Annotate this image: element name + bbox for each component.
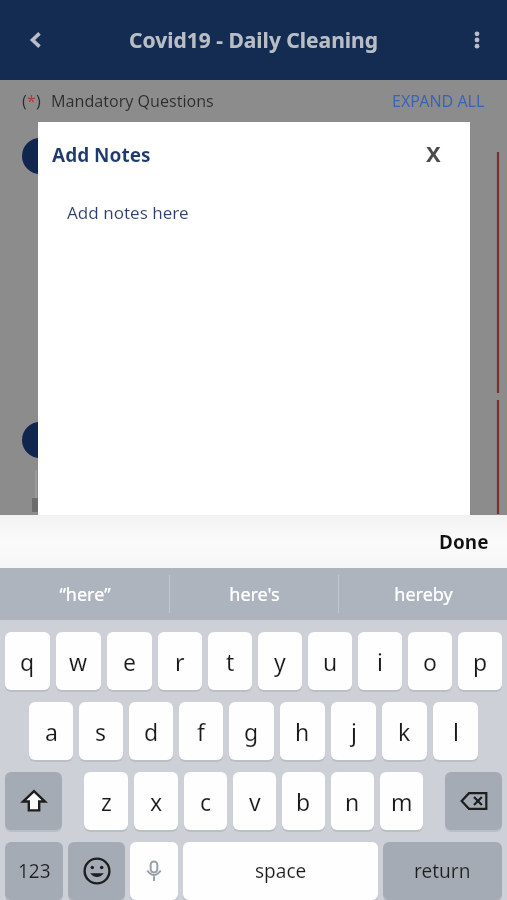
staticText: ) [36,90,41,112]
staticText: c [200,786,212,817]
button[interactable]: “here” [0,568,169,620]
staticText: EXPAND ALL [392,90,485,112]
button[interactable]: Emoji [68,842,125,900]
staticText: s [95,716,107,747]
staticText: “here” [59,582,111,607]
button[interactable]: r [158,632,202,690]
staticText: X [426,138,441,168]
button[interactable]: c [184,772,227,830]
staticText: b [296,786,311,817]
button[interactable]: u [308,632,352,690]
button[interactable]: Done [421,521,507,563]
staticText: d [144,716,159,747]
button[interactable]: j [331,702,376,760]
button[interactable]: Voice input [130,842,178,900]
staticText: l [453,716,459,747]
button[interactable]: d [129,702,173,760]
button[interactable]: Close [412,132,454,174]
button[interactable]: t [208,632,252,690]
staticText: h [295,716,310,747]
button[interactable]: space [183,842,378,900]
button[interactable]: z [84,772,128,830]
button[interactable]: w [56,632,101,690]
staticText: Done [439,529,489,555]
button[interactable]: p [458,632,502,690]
button[interactable]: i [358,632,402,690]
staticText: q [20,646,35,677]
button[interactable]: a [29,702,73,760]
button[interactable]: Backspace [445,772,502,830]
staticText: ( [22,90,27,112]
staticText: hereby [394,582,453,607]
staticText: u [323,646,338,677]
button[interactable]: hereby [339,568,507,620]
button[interactable]: return [383,842,502,900]
staticText: g [244,716,259,747]
button[interactable]: Back [14,18,58,62]
staticText: * [27,90,36,112]
staticText: space [255,858,307,884]
staticText: z [101,786,112,817]
staticText: p [473,646,488,677]
staticText: n [345,786,360,817]
button[interactable]: g [229,702,274,760]
button[interactable]: o [408,632,452,690]
staticText: Add Notes [52,142,151,168]
button[interactable]: EXPAND ALL [392,84,485,118]
staticText: a [45,716,58,747]
staticText: Add notes here [67,201,189,224]
staticText: k [398,716,411,747]
button[interactable]: v [233,772,276,830]
button[interactable]: x [134,772,178,830]
button[interactable]: k [382,702,427,760]
button[interactable]: m [380,772,423,830]
staticText: return [414,858,471,884]
button[interactable]: More options [455,18,499,62]
button[interactable]: Shift [5,772,62,830]
button[interactable]: b [282,772,325,830]
staticText: here's [229,582,280,607]
staticText: e [123,646,136,677]
staticText: 123 [18,858,51,884]
staticText: t [226,646,235,677]
button[interactable]: n [331,772,374,830]
staticText: w [69,646,88,677]
button[interactable]: s [79,702,123,760]
staticText: o [423,646,437,677]
staticText: j [351,716,357,747]
button[interactable]: q [5,632,50,690]
button[interactable]: h [280,702,325,760]
staticText: y [274,646,286,677]
button[interactable]: Add notes here [38,192,470,232]
button[interactable]: y [258,632,302,690]
staticText: Covid19 - Daily Cleaning [129,26,379,55]
staticText: m [391,786,413,817]
staticText: f [197,716,205,747]
staticText: v [249,786,261,817]
staticText: r [175,646,185,677]
button[interactable]: 123 [5,842,63,900]
button[interactable]: l [433,702,478,760]
staticText: x [150,786,163,817]
staticText: Mandatory Questions [51,90,214,112]
button[interactable]: e [107,632,152,690]
staticText: i [377,646,383,677]
button[interactable]: here's [170,568,338,620]
button[interactable]: f [179,702,223,760]
